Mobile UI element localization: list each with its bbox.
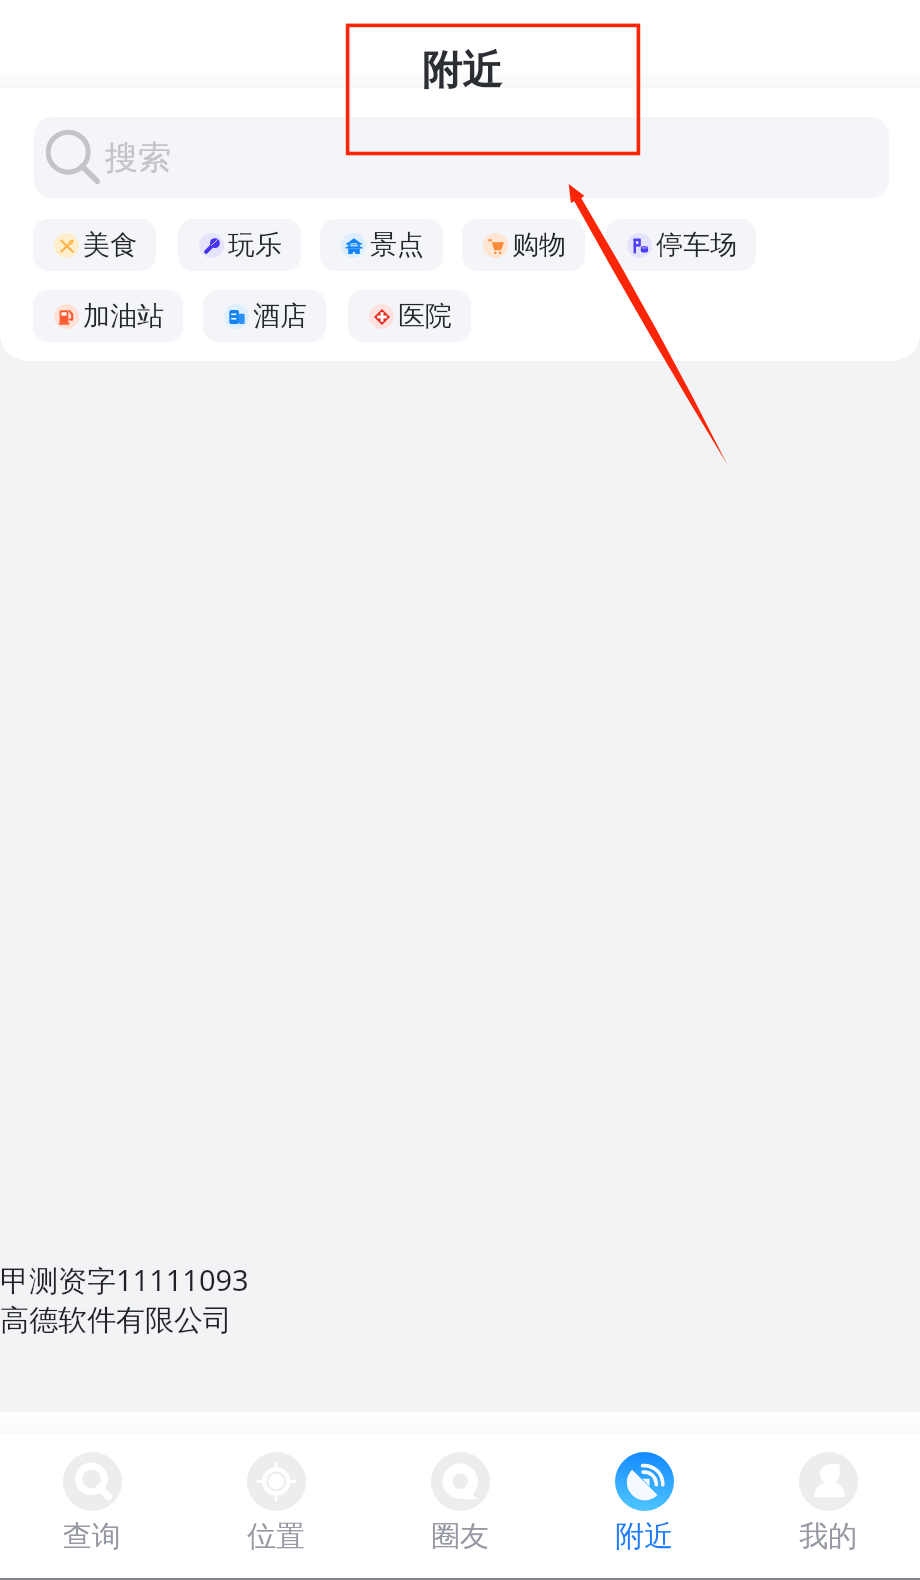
- button[interactable]: 景点: [320, 219, 443, 271]
- button[interactable]: 圈友: [368, 1452, 552, 1555]
- staticText: 圈友: [431, 1518, 489, 1555]
- staticText: 玩乐: [228, 228, 282, 262]
- staticText: 附近: [422, 45, 502, 95]
- staticText: 医院: [398, 299, 452, 333]
- staticText: 美食: [83, 228, 137, 262]
- button[interactable]: 搜索: [34, 117, 889, 198]
- staticText: 位置: [247, 1518, 305, 1555]
- staticText: 搜索: [105, 137, 171, 179]
- button[interactable]: 附近: [552, 1452, 736, 1555]
- staticText: 高德软件有限公司: [0, 1302, 232, 1339]
- button[interactable]: 我的: [736, 1452, 920, 1555]
- button[interactable]: 酒店: [203, 290, 326, 342]
- staticText: 停车场: [656, 228, 737, 262]
- button[interactable]: 位置: [184, 1452, 368, 1555]
- staticText: 附近: [615, 1518, 673, 1555]
- staticText: 甲测资字11111093: [0, 1260, 249, 1300]
- staticText: 查询: [63, 1518, 121, 1555]
- staticText: 我的: [799, 1518, 857, 1555]
- button[interactable]: 玩乐: [178, 219, 301, 271]
- staticText: 酒店: [253, 299, 307, 333]
- staticText: 景点: [370, 228, 424, 262]
- staticText: 购物: [512, 228, 566, 262]
- button[interactable]: 加油站: [33, 290, 183, 342]
- button[interactable]: 美食: [33, 219, 156, 271]
- button[interactable]: 查询: [0, 1452, 184, 1555]
- button[interactable]: 停车场: [606, 219, 756, 271]
- button[interactable]: 购物: [462, 219, 585, 271]
- staticText: 加油站: [83, 299, 164, 333]
- button[interactable]: 医院: [348, 290, 471, 342]
